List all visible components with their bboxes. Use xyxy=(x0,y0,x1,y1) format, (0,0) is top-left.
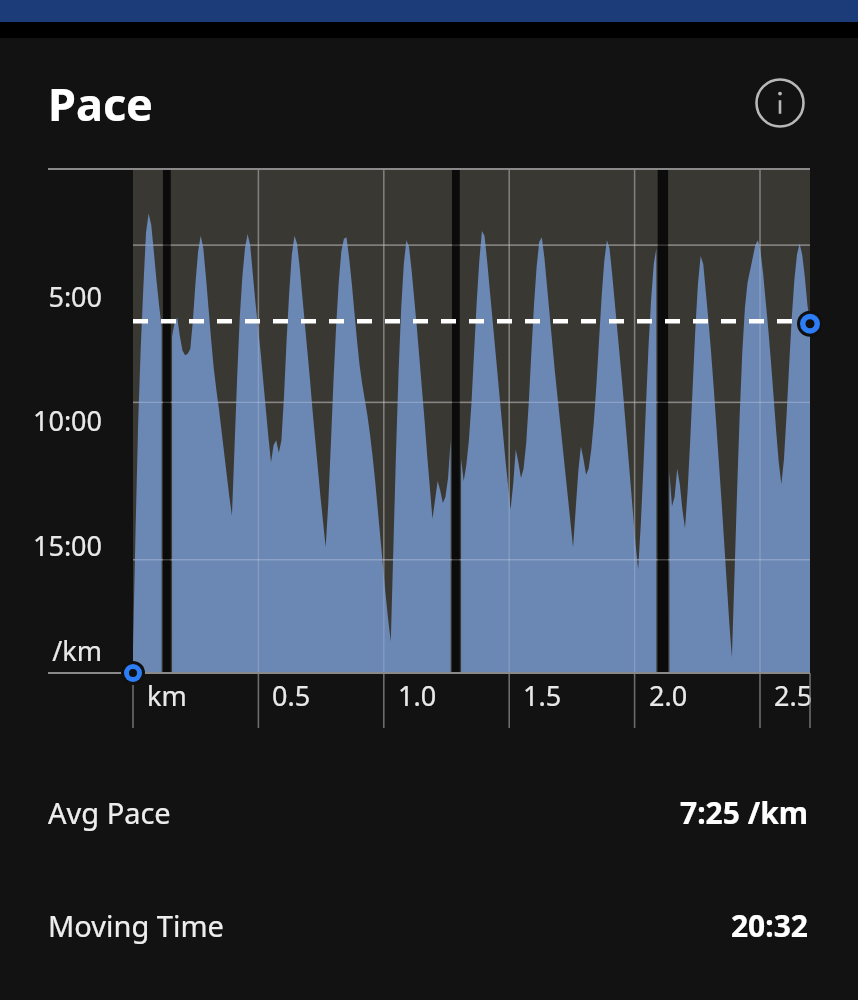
staticText: 0.5 xyxy=(272,677,311,714)
staticText: /km xyxy=(52,632,102,669)
staticText: 5:00 xyxy=(48,278,102,315)
button[interactable]: Pace xyxy=(48,73,153,134)
staticText: 2.5 xyxy=(774,677,813,714)
button[interactable]: Moving Time xyxy=(0,869,858,982)
staticText: km xyxy=(147,677,187,714)
staticText: Moving Time xyxy=(48,906,224,945)
staticText: 20:32 xyxy=(730,905,808,946)
button[interactable]: Avg Pace xyxy=(0,756,858,869)
button[interactable]: Info about pace xyxy=(752,75,808,131)
staticText: 2.0 xyxy=(649,677,688,714)
staticText: 1.0 xyxy=(398,677,437,714)
staticText: 15:00 xyxy=(32,527,102,564)
staticText: 1.5 xyxy=(523,677,562,714)
staticText: Avg Pace xyxy=(48,793,171,832)
staticText: 7:25 /km xyxy=(679,792,808,833)
staticText: 10:00 xyxy=(32,402,102,439)
